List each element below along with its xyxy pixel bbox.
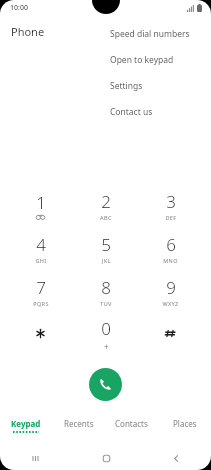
staticText: JKL: [102, 257, 111, 264]
staticText: Open to keypad: [110, 54, 174, 66]
staticText: PQRS: [33, 300, 49, 307]
staticText: 8: [101, 276, 111, 299]
button[interactable]: Settings: [98, 73, 201, 99]
button[interactable]: Recents: [52, 418, 105, 438]
button[interactable]: Home: [71, 446, 141, 470]
staticText: DEF: [165, 214, 177, 221]
button[interactable]: Speed dial numbers: [98, 21, 201, 47]
staticText: 3: [166, 190, 176, 213]
button[interactable]: 7: [8, 270, 73, 313]
staticText: +: [104, 341, 109, 352]
button[interactable]: 6: [138, 227, 203, 270]
staticText: 9: [166, 276, 176, 299]
button[interactable]: 2: [73, 184, 138, 227]
staticText: Settings: [110, 80, 143, 92]
staticText: Phone: [11, 24, 45, 39]
button[interactable]: Places: [158, 418, 211, 438]
staticText: 5: [101, 233, 111, 256]
button[interactable]: Recent apps: [0, 446, 71, 470]
staticText: 0: [101, 317, 111, 340]
button[interactable]: Contacts: [105, 418, 158, 438]
staticText: MNO: [163, 257, 178, 264]
button[interactable]: 9: [138, 270, 203, 313]
button[interactable]: Call: [89, 368, 122, 401]
staticText: 6: [166, 233, 176, 256]
button[interactable]: [138, 313, 203, 356]
button[interactable]: 4: [8, 227, 73, 270]
staticText: 10:00: [10, 3, 28, 13]
button[interactable]: Keypad: [0, 418, 52, 438]
button[interactable]: Contact us: [98, 99, 201, 125]
staticText: Keypad: [11, 418, 41, 429]
button[interactable]: 1: [8, 184, 73, 227]
button[interactable]: 3: [138, 184, 203, 227]
staticText: 2: [101, 190, 111, 213]
button[interactable]: 0: [73, 313, 138, 356]
button[interactable]: Back: [141, 446, 211, 470]
staticText: 7: [36, 276, 46, 299]
staticText: ABC: [100, 214, 112, 221]
staticText: Recents: [64, 418, 94, 429]
staticText: Speed dial numbers: [110, 28, 190, 40]
staticText: 4: [36, 233, 46, 256]
staticText: TUV: [100, 300, 112, 307]
staticText: Contacts: [115, 418, 148, 429]
staticText: Places: [173, 418, 197, 429]
button[interactable]: Open to keypad: [98, 47, 201, 73]
button[interactable]: 5: [73, 227, 138, 270]
staticText: 1: [36, 191, 46, 214]
button[interactable]: [8, 313, 73, 356]
staticText: WXYZ: [162, 300, 179, 307]
button[interactable]: 8: [73, 270, 138, 313]
staticText: Contact us: [110, 106, 153, 118]
staticText: GHI: [35, 257, 47, 264]
